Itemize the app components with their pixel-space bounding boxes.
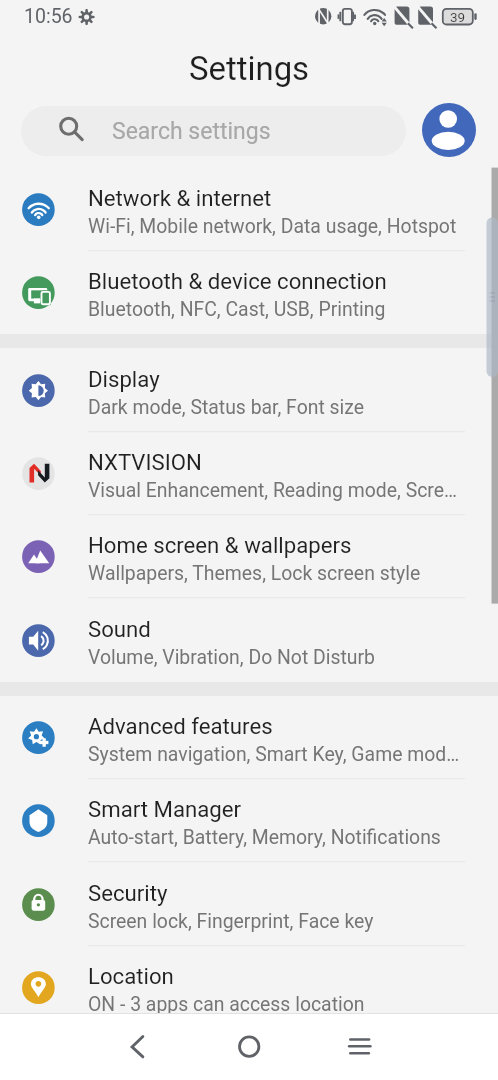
- button[interactable]: Advanced features: [0, 696, 498, 779]
- staticText: ON - 3 apps can access location: [88, 993, 498, 1016]
- staticText: 10:56: [24, 5, 73, 28]
- staticText: Screen lock, Fingerprint, Face key: [88, 910, 498, 933]
- staticText: Advanced features: [88, 713, 498, 739]
- staticText: Bluetooth & device connection: [88, 268, 498, 294]
- button[interactable]: Back: [117, 1026, 157, 1066]
- button[interactable]: Smart Manager: [0, 779, 498, 862]
- button[interactable]: Search settings: [21, 106, 406, 156]
- staticText: Visual Enhancement, Reading mode, Scre…: [88, 479, 498, 502]
- staticText: Smart Manager: [88, 796, 498, 822]
- button[interactable]: Home: [229, 1026, 269, 1066]
- staticText: Bluetooth, NFC, Cast, USB, Printing: [88, 298, 498, 321]
- staticText: Home screen & wallpapers: [88, 532, 498, 558]
- staticText: Display: [88, 366, 498, 392]
- staticText: Wallpapers, Themes, Lock screen style: [88, 562, 498, 585]
- button[interactable]: Bluetooth & device connection: [0, 251, 498, 334]
- button[interactable]: Display: [0, 349, 498, 432]
- button[interactable]: Sound: [0, 599, 498, 682]
- staticText: Sound: [88, 616, 498, 642]
- button[interactable]: Security: [0, 863, 498, 946]
- staticText: Security: [88, 880, 498, 906]
- button[interactable]: Location: [0, 946, 498, 1029]
- staticText: 39: [450, 9, 466, 25]
- button[interactable]: NXTVISION: [0, 432, 498, 515]
- button[interactable]: Account: [422, 103, 476, 157]
- staticText: Search settings: [112, 118, 271, 145]
- staticText: NXTVISION: [88, 449, 498, 475]
- button[interactable]: Recent apps: [338, 1026, 382, 1070]
- staticText: System navigation, Smart Key, Game mod…: [88, 743, 498, 766]
- staticText: Volume, Vibration, Do Not Disturb: [88, 646, 498, 669]
- button[interactable]: Network & internet: [0, 168, 498, 251]
- staticText: Auto-start, Battery, Memory, Notificatio…: [88, 826, 498, 849]
- staticText: Dark mode, Status bar, Font size: [88, 396, 498, 419]
- staticText: Network & internet: [88, 185, 498, 211]
- staticText: Settings: [189, 49, 310, 88]
- button[interactable]: Home screen & wallpapers: [0, 515, 498, 598]
- staticText: Location: [88, 963, 498, 989]
- staticText: Wi-Fi, Mobile network, Data usage, Hotsp…: [88, 215, 498, 238]
